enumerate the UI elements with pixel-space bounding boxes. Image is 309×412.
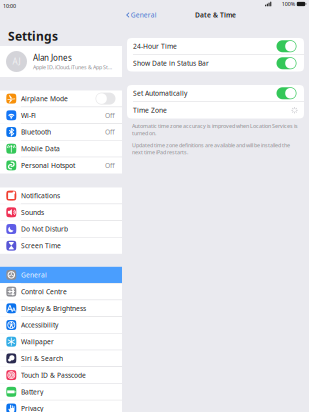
staticText: Apple ID, iCloud, iTunes & App St… <box>33 63 112 71</box>
button[interactable]: Mobile Data <box>0 141 122 157</box>
button[interactable]: General <box>0 267 122 283</box>
button[interactable]: AJ <box>0 46 122 77</box>
staticText: 100% <box>282 0 295 8</box>
button[interactable]: Do Not Disturb <box>0 221 122 237</box>
button[interactable]: Airplane Mode <box>0 90 122 107</box>
staticText: Control Centre <box>21 287 67 296</box>
staticText: Settings <box>8 28 58 44</box>
button[interactable]: Screen Time <box>0 238 122 254</box>
staticText: Wallpaper <box>21 337 54 346</box>
staticText: Off <box>105 128 115 136</box>
staticText: 24-Hour Time <box>133 42 177 51</box>
staticText: Do Not Disturb <box>21 225 68 233</box>
button[interactable]: Wi-Fi <box>0 107 122 123</box>
staticText: Updated time zone definitions are availa… <box>132 142 290 156</box>
staticText: General <box>131 11 157 19</box>
button[interactable]: Personal Hotspot <box>0 157 122 173</box>
staticText: Automatic time zone accuracy is improved… <box>132 122 298 137</box>
staticText: Personal Hotspot <box>21 161 75 170</box>
staticText: Accessibility <box>21 321 58 329</box>
staticText: 10:00 <box>3 2 16 10</box>
button[interactable]: Wallpaper <box>0 334 122 350</box>
button[interactable]: Control Centre <box>0 283 122 300</box>
staticText: Touch ID & Passcode <box>21 371 86 380</box>
staticText: AJ <box>12 56 20 67</box>
staticText: Privacy <box>21 404 43 412</box>
staticText: Battery <box>21 387 43 396</box>
staticText: Wi-Fi <box>21 111 36 120</box>
button[interactable]: Sounds <box>0 204 122 220</box>
staticText: General <box>21 270 47 279</box>
staticText: Show Date in Status Bar <box>133 59 209 68</box>
staticText: Siri & Search <box>21 354 63 363</box>
button[interactable]: Notifications <box>0 187 122 204</box>
staticText: Notifications <box>21 191 60 200</box>
button[interactable]: Bluetooth <box>0 124 122 140</box>
button[interactable]: Siri & Search <box>0 350 122 366</box>
button[interactable]: Battery <box>0 384 122 400</box>
button[interactable]: General <box>122 8 161 22</box>
staticText: Date & Time <box>195 11 236 19</box>
staticText: Airplane Mode <box>21 94 68 103</box>
staticText: Bluetooth <box>21 128 51 136</box>
staticText: Mobile Data <box>21 144 60 153</box>
staticText: Sounds <box>21 208 44 217</box>
staticText: Set Automatically <box>133 89 187 98</box>
button[interactable]: Touch ID & Passcode <box>0 367 122 383</box>
button[interactable]: Display & Brightness <box>0 300 122 316</box>
staticText: Off <box>105 161 115 170</box>
staticText: Time Zone <box>133 106 167 115</box>
staticText: Screen Time <box>21 241 61 250</box>
staticText: Display & Brightness <box>21 304 86 313</box>
button[interactable]: Privacy <box>0 400 122 412</box>
button[interactable]: Accessibility <box>0 317 122 333</box>
staticText: Off <box>105 111 115 120</box>
staticText: Alan Jones <box>33 52 72 63</box>
